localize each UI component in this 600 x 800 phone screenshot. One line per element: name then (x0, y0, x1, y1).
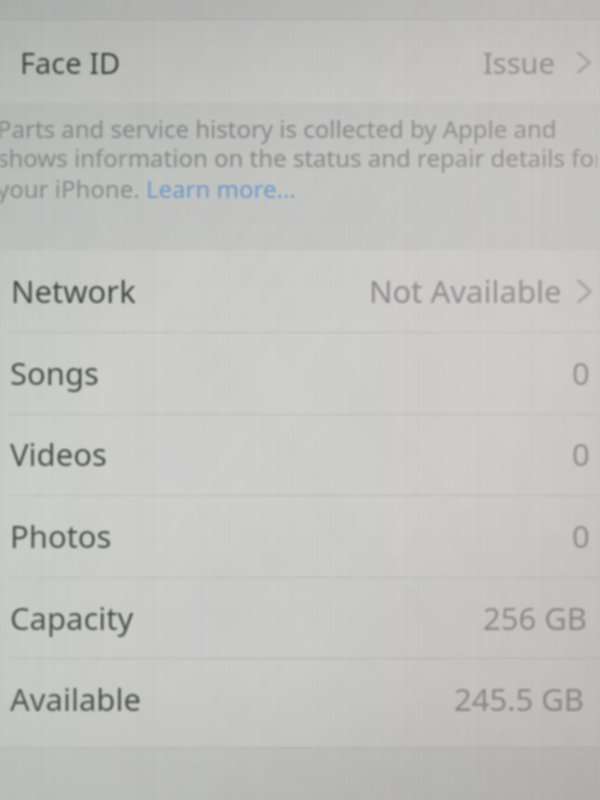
staticText: Network (11, 270, 136, 312)
staticText: Not Available (369, 270, 562, 312)
staticText: your iPhone. (0, 172, 146, 205)
button[interactable]: Face ID (0, 21, 600, 104)
staticText: Parts and service history is collected b… (0, 112, 557, 145)
button[interactable]: Capacity (0, 576, 600, 659)
staticText: Capacity (10, 597, 134, 639)
staticText: Available (10, 678, 141, 720)
button[interactable]: Videos (0, 412, 600, 495)
other: Open details (577, 280, 592, 303)
staticText: 0 (572, 515, 590, 557)
staticText: Face ID (20, 43, 121, 82)
button[interactable]: Available (0, 657, 600, 740)
staticText: 256 GB (483, 597, 587, 639)
other: Open details (577, 52, 591, 73)
button[interactable]: Network (0, 249, 600, 332)
staticText: 0 (572, 352, 590, 394)
staticText: Issue (483, 43, 555, 82)
staticText: shows information on the status and repa… (0, 141, 597, 174)
staticText: 0 (572, 433, 590, 475)
button[interactable]: Learn more... (146, 172, 296, 205)
staticText: Songs (10, 352, 99, 394)
staticText: Photos (10, 515, 112, 557)
staticText: Videos (10, 433, 107, 475)
button[interactable]: Photos (0, 494, 600, 577)
staticText: 245.5 GB (454, 678, 585, 720)
button[interactable]: Songs (0, 331, 600, 414)
